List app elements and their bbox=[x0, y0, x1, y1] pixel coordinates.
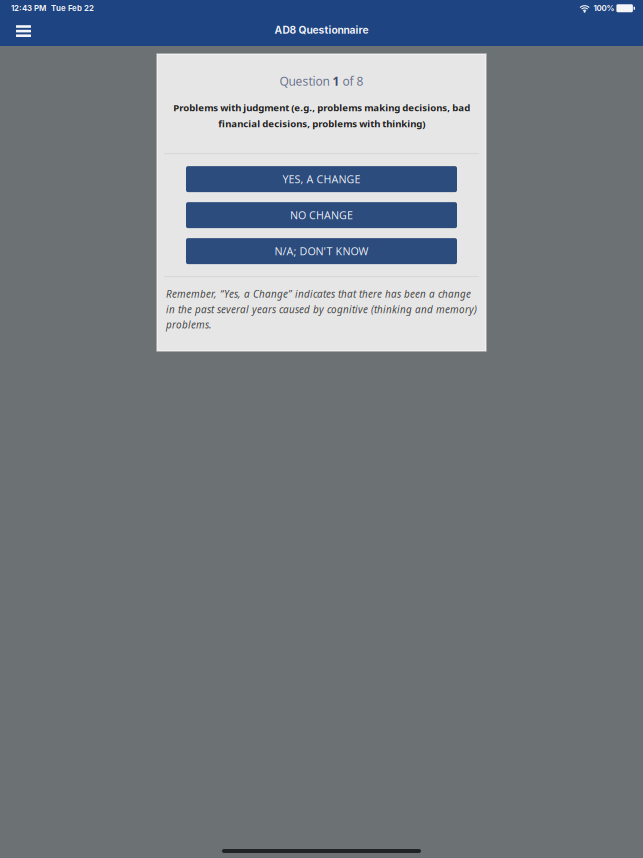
staticText: Question bbox=[279, 73, 332, 89]
staticText: AD8 Questionnaire bbox=[274, 24, 368, 36]
staticText: Problems with judgment (e.g., problems m… bbox=[173, 101, 470, 130]
staticText: YES, A CHANGE bbox=[282, 172, 360, 186]
staticText: of 8 bbox=[339, 73, 363, 89]
staticText: 12:43 PM bbox=[11, 3, 46, 13]
button[interactable]: Menu bbox=[8, 17, 39, 43]
staticText: 100% bbox=[593, 3, 614, 13]
button[interactable]: YES, A CHANGE bbox=[186, 166, 457, 192]
staticText: NO CHANGE bbox=[290, 208, 353, 222]
staticText: 1 bbox=[332, 73, 339, 89]
staticText: Remember, “Yes, a Change” indicates that… bbox=[166, 287, 477, 331]
staticText: N/A; DON'T KNOW bbox=[274, 244, 368, 258]
staticText: Tue Feb 22 bbox=[51, 3, 94, 13]
button[interactable]: N/A; DON'T KNOW bbox=[186, 238, 457, 264]
button[interactable]: NO CHANGE bbox=[186, 202, 457, 228]
